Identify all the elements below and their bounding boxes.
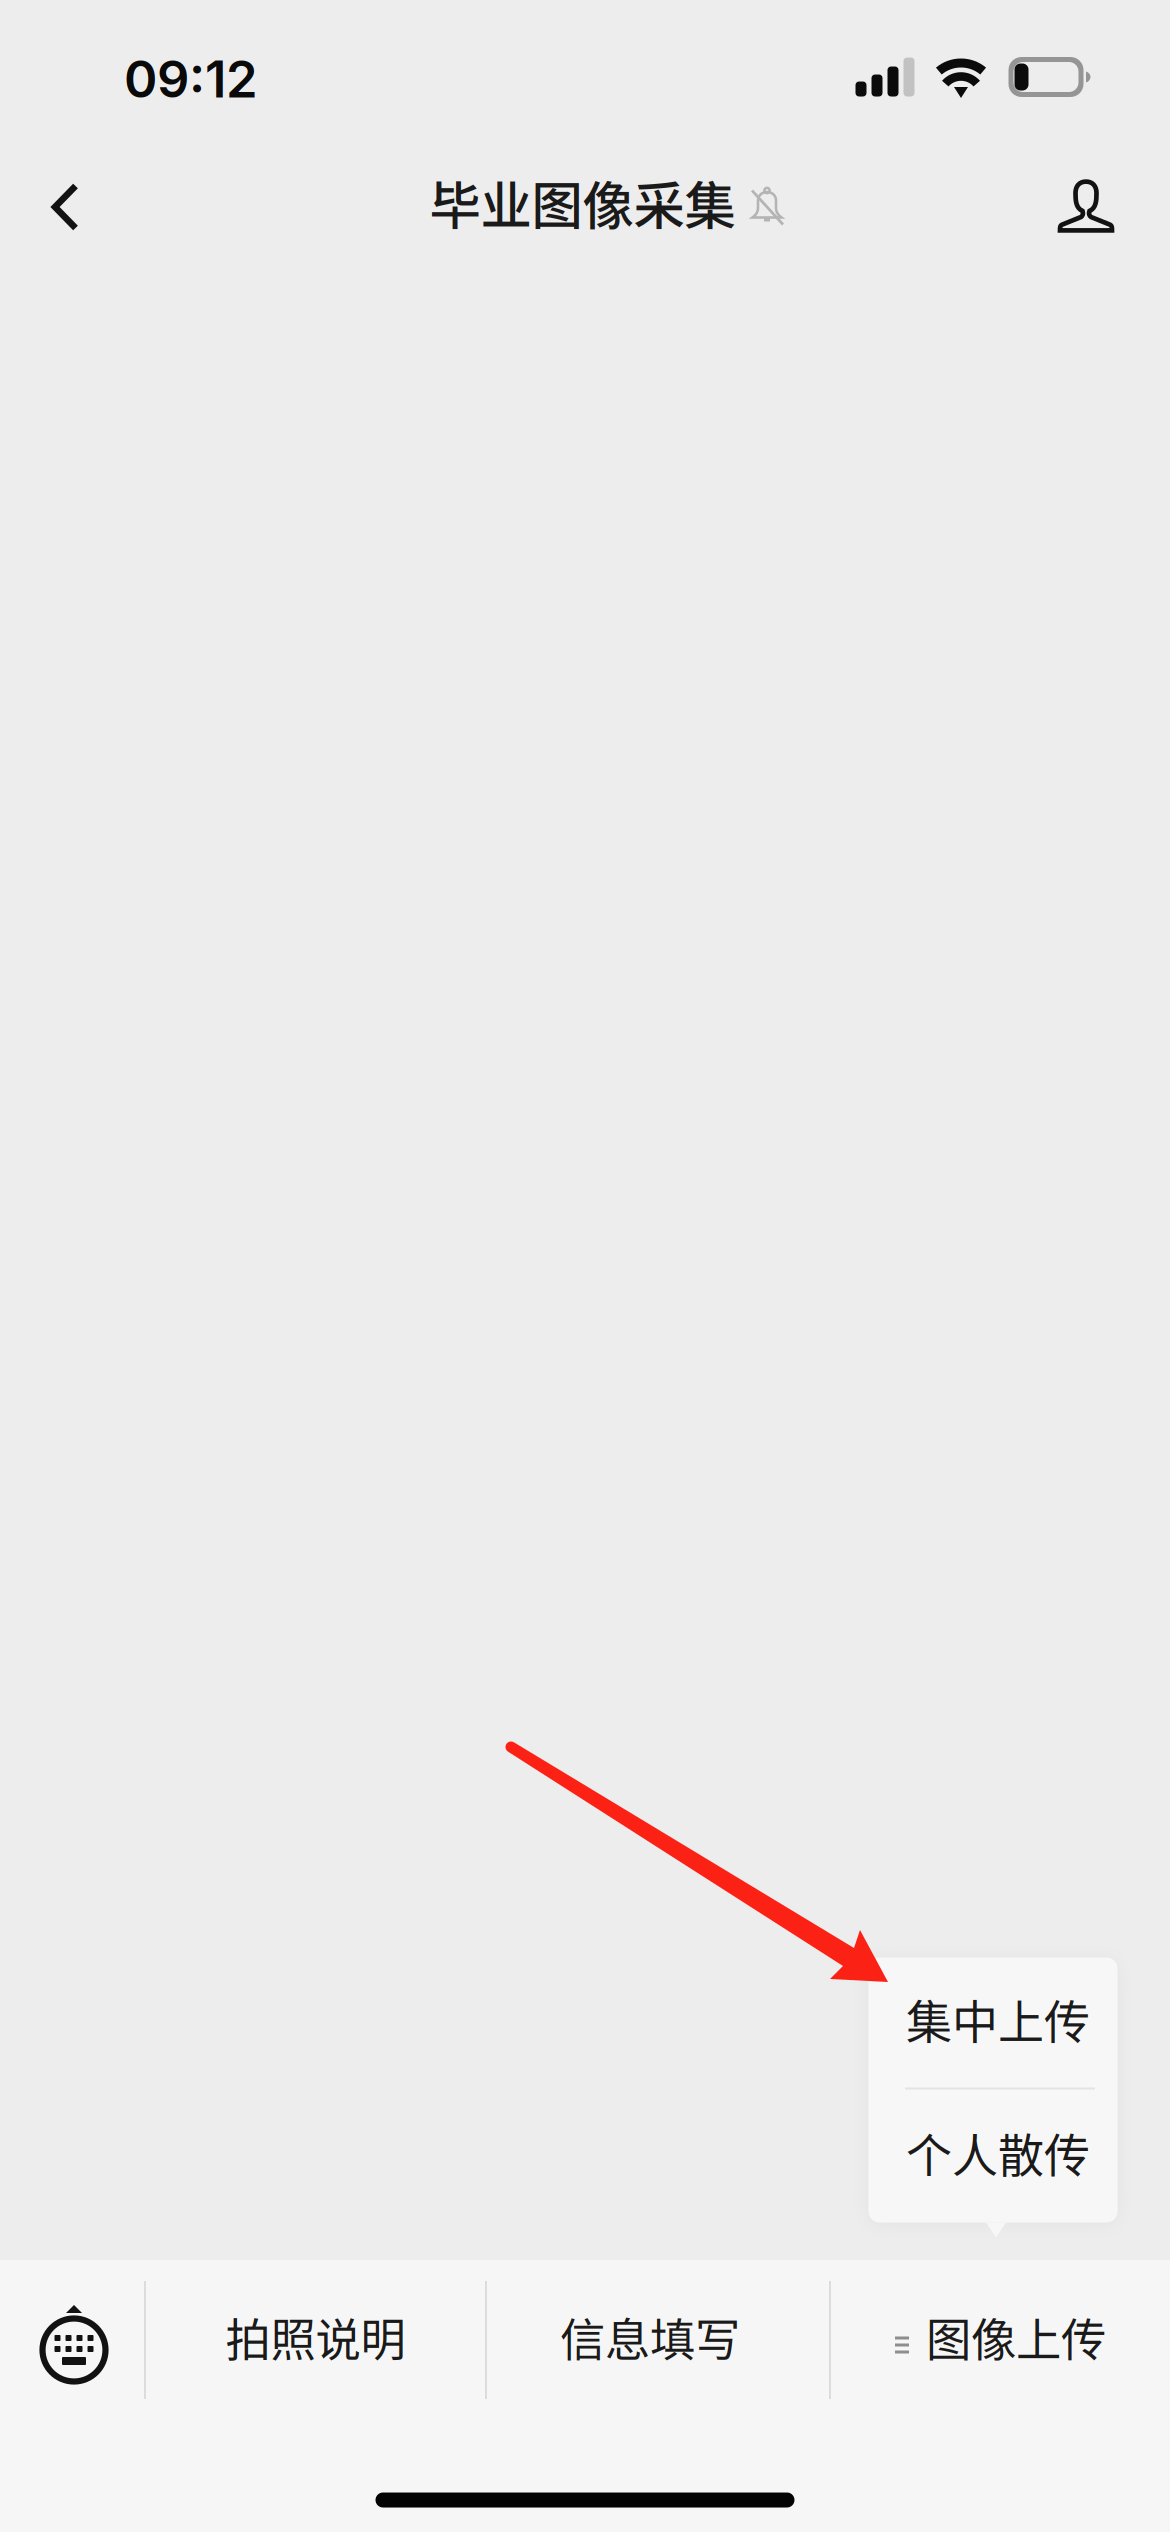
button[interactable]: Keyboard (0, 2260, 144, 2420)
button[interactable]: 集中上传 (868, 1957, 1117, 2087)
staticText: 图像上传 (926, 2304, 1106, 2370)
button[interactable]: Profile (1031, 148, 1141, 266)
button[interactable]: Back (10, 148, 120, 266)
button[interactable]: 个人散传 (868, 2089, 1117, 2222)
staticText: 信息填写 (560, 2304, 740, 2370)
staticText: 集中上传 (906, 1985, 1090, 2052)
staticText: 拍照说明 (225, 2304, 405, 2370)
button[interactable]: 图像上传 (831, 2260, 1170, 2420)
button[interactable]: 信息填写 (487, 2260, 829, 2420)
staticText: 毕业图像采集 (429, 165, 735, 239)
staticText: 09:12 (124, 48, 258, 110)
button[interactable]: 拍照说明 (146, 2260, 485, 2420)
staticText: 个人散传 (906, 2119, 1090, 2185)
